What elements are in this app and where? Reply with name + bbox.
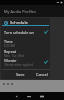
button[interactable]: Home — [24, 92, 34, 100]
staticText: Vibrate when applied — [4, 63, 33, 67]
button[interactable]: Repeat — [1, 48, 50, 58]
button[interactable]: Recent apps — [37, 92, 47, 100]
button[interactable]: Time — [1, 38, 50, 48]
staticText: Vibrate — [4, 58, 17, 63]
button[interactable]: Turn schedule on — [1, 27, 50, 37]
button[interactable]: Back — [11, 92, 21, 100]
staticText: Turn schedule on — [4, 30, 44, 35]
staticText: Schedule — [10, 20, 28, 26]
staticText: 8:00 AM — [4, 44, 15, 48]
staticText: My Audio Profiles — [4, 9, 36, 14]
staticText: Save — [16, 72, 25, 77]
button[interactable]: Save — [12, 69, 29, 79]
button[interactable]: Cancel — [33, 69, 50, 79]
staticText: Mon, Tue, Wed — [4, 54, 25, 58]
staticText: Repeat — [4, 49, 17, 54]
staticText: Time — [4, 39, 13, 44]
staticText: Cancel — [36, 72, 48, 77]
button[interactable]: Vibrate — [1, 57, 50, 67]
